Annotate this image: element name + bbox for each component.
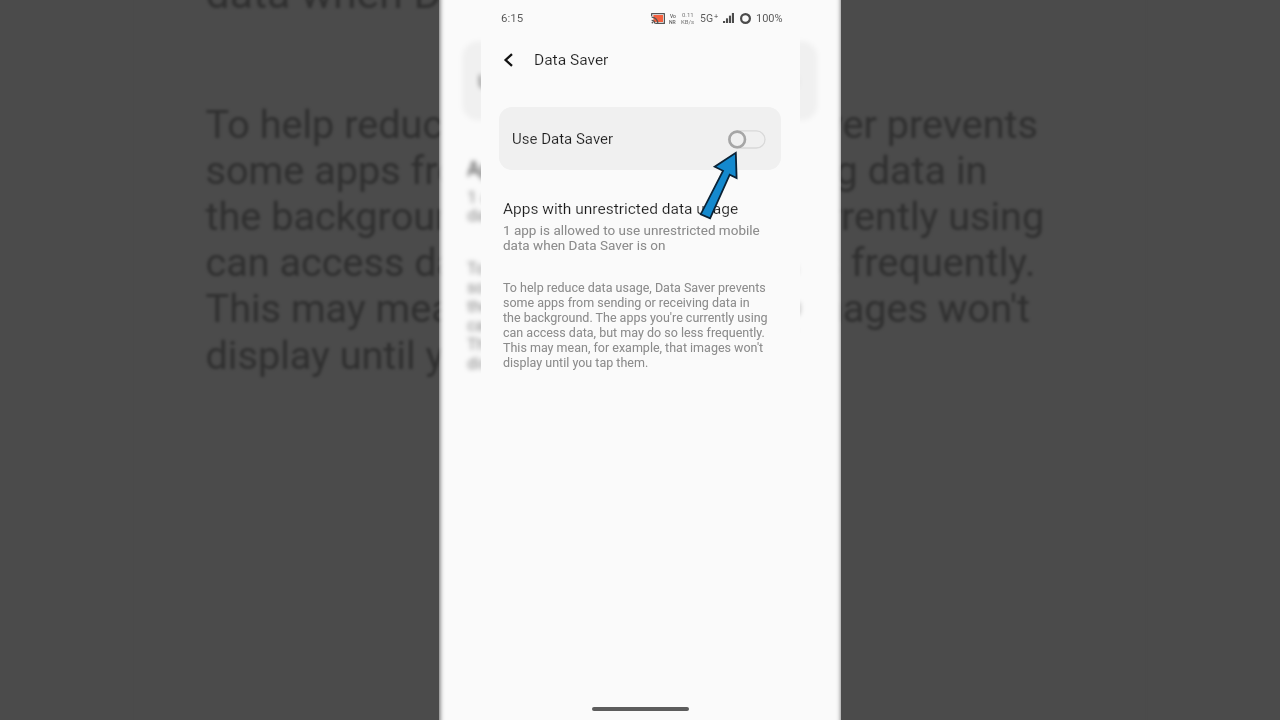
staticText: 100% bbox=[756, 12, 783, 25]
staticText: KB/s bbox=[681, 18, 695, 25]
staticText: 5G bbox=[700, 12, 714, 24]
button[interactable]: Use Data Saver bbox=[499, 107, 781, 170]
staticText: + bbox=[714, 12, 719, 21]
staticText: 1 app is allowed to use unrestricted mob… bbox=[205, 0, 1036, 20]
staticText: Apps with unrestricted data usage bbox=[503, 200, 739, 218]
staticText: To help reduce data usage, Data Saver pr… bbox=[503, 280, 769, 370]
staticText: 0.11 bbox=[682, 11, 694, 18]
staticText: 6:15 bbox=[501, 11, 524, 24]
staticText: Apps with unrestricted data usage bbox=[467, 158, 765, 181]
staticText: NR bbox=[669, 19, 676, 25]
staticText: Data Saver bbox=[534, 51, 609, 69]
button[interactable]: Back bbox=[486, 38, 530, 82]
staticText: 1 app is allowed to use unrestricted mob… bbox=[467, 186, 797, 226]
staticText: 1 app is allowed to use unrestricted mob… bbox=[503, 222, 765, 254]
staticText: Use Data Saver bbox=[512, 130, 614, 148]
staticText: To help reduce data usage, Data Saver pr… bbox=[205, 100, 1048, 378]
staticText: Use Data Saver bbox=[479, 70, 607, 93]
staticText: Vo bbox=[670, 13, 676, 19]
staticText: To help reduce data usage, Data Saver pr… bbox=[467, 259, 802, 373]
